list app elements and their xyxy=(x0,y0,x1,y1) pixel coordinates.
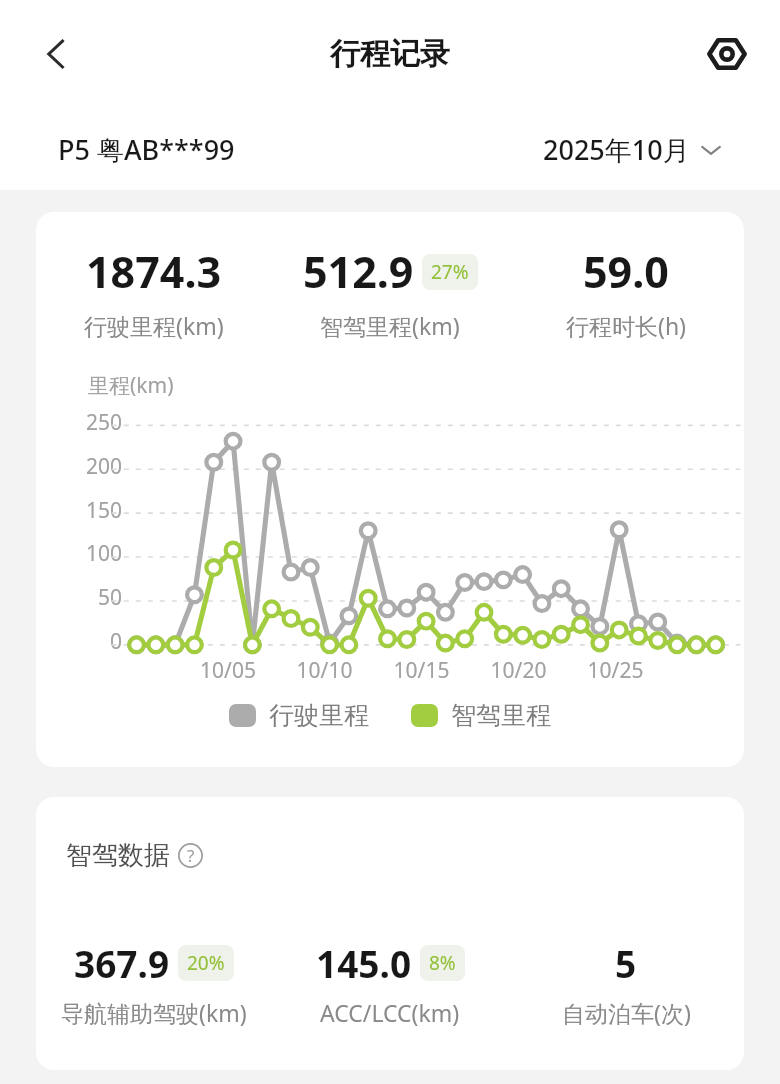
button[interactable]: 2025年10月 xyxy=(543,131,722,168)
staticText: 250 xyxy=(85,408,122,437)
staticText: 20% xyxy=(187,950,225,976)
staticText: 367.9 xyxy=(74,938,170,988)
staticText: 1874.3 xyxy=(86,242,222,301)
staticText: 导航辅助驾驶(km) xyxy=(61,997,247,1028)
staticText: 10/10 xyxy=(276,656,373,685)
staticText: 自动泊车(次) xyxy=(562,997,691,1028)
staticText: 智驾里程(km) xyxy=(320,310,460,341)
staticText: P5 粤AB***99 xyxy=(58,131,235,168)
staticText: 10/15 xyxy=(373,656,470,685)
staticText: 100 xyxy=(85,539,122,568)
staticText: ACC/LCC(km) xyxy=(320,997,460,1028)
staticText: 59.0 xyxy=(583,242,669,301)
button[interactable]: 智驾里程 xyxy=(411,700,551,731)
button[interactable]: Settings xyxy=(698,25,756,83)
staticText: 27% xyxy=(431,259,469,285)
staticText: 里程(km) xyxy=(88,371,174,400)
button[interactable]: Back xyxy=(26,24,86,84)
staticText: 145.0 xyxy=(316,938,412,988)
button[interactable]: 行驶里程 xyxy=(229,700,369,731)
staticText: 512.9 xyxy=(303,242,414,301)
staticText: 0 xyxy=(109,627,122,656)
staticText: 10/20 xyxy=(470,656,567,685)
staticText: 50 xyxy=(97,583,122,612)
staticText: 智驾数据 xyxy=(66,839,170,872)
staticText: ? xyxy=(187,844,195,867)
staticText: 10/25 xyxy=(567,656,664,685)
staticText: 10/05 xyxy=(180,656,276,685)
staticText: 150 xyxy=(85,496,122,525)
staticText: 智驾里程 xyxy=(451,700,551,731)
staticText: 8% xyxy=(429,950,456,976)
staticText: 2025年10月 xyxy=(543,131,690,168)
staticText: 行驶里程(km) xyxy=(84,310,224,341)
staticText: 行程记录 xyxy=(330,35,450,73)
staticText: 5 xyxy=(615,938,637,988)
button[interactable]: Help xyxy=(177,842,204,869)
staticText: 200 xyxy=(85,452,122,481)
staticText: 行程时长(h) xyxy=(566,310,687,341)
staticText: 行驶里程 xyxy=(269,700,369,731)
